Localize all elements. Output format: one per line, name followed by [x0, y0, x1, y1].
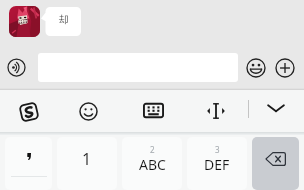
- button[interactable]: Voice input: [7, 58, 26, 77]
- button[interactable]: 2: [122, 137, 182, 190]
- button[interactable]: [5, 137, 52, 190]
- staticText: 2: [150, 144, 155, 155]
- button[interactable]: More options: [275, 58, 295, 78]
- staticText: ABC: [139, 155, 166, 174]
- button[interactable]: 1: [57, 137, 117, 190]
- button[interactable]: Avatar: [9, 6, 40, 37]
- button[interactable]: Backspace: [252, 137, 299, 190]
- button[interactable]: Keyboard layout: [143, 100, 164, 121]
- staticText: DEF: [204, 155, 230, 174]
- button[interactable]: Move cursor: [203, 101, 229, 121]
- button[interactable]: 却: [41, 7, 81, 36]
- button[interactable]: Emoji: [79, 102, 98, 121]
- staticText: 1: [82, 148, 92, 170]
- button[interactable]: Emoji: [246, 58, 266, 78]
- button[interactable]: Hide keyboard: [265, 98, 287, 118]
- button[interactable]: 3: [187, 137, 247, 190]
- staticText: 却: [59, 13, 69, 26]
- button[interactable]: Input method menu: [19, 102, 39, 122]
- staticText: 3: [215, 144, 220, 155]
